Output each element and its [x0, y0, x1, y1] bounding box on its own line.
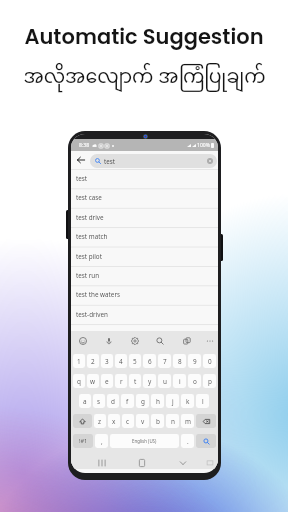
- button[interactable]: Back: [71, 151, 90, 169]
- button[interactable]: Search: [196, 434, 216, 448]
- button[interactable]: Shift: [73, 414, 92, 428]
- button[interactable]: x: [108, 414, 120, 428]
- staticText: 8: [178, 357, 182, 366]
- button[interactable]: f: [121, 394, 134, 408]
- staticText: 1: [77, 357, 81, 366]
- button[interactable]: q: [73, 374, 85, 388]
- button[interactable]: o: [188, 374, 201, 388]
- staticText: 4: [119, 357, 123, 366]
- button[interactable]: l: [196, 394, 209, 408]
- staticText: v: [141, 417, 145, 426]
- staticText: l: [202, 397, 204, 406]
- button[interactable]: test-driven: [71, 305, 218, 324]
- button[interactable]: i: [173, 374, 186, 388]
- button[interactable]: test case: [71, 188, 218, 207]
- button[interactable]: z: [94, 414, 106, 428]
- button[interactable]: u: [158, 374, 171, 388]
- button[interactable]: c: [122, 414, 134, 428]
- staticText: .: [187, 437, 189, 445]
- button[interactable]: Voice input: [103, 335, 115, 347]
- staticText: t: [134, 377, 137, 386]
- button[interactable]: test the waters: [71, 285, 218, 304]
- button[interactable]: Search: [154, 335, 166, 347]
- button[interactable]: w: [87, 374, 99, 388]
- button[interactable]: Clear search: [207, 158, 213, 164]
- button[interactable]: .: [181, 434, 194, 448]
- button[interactable]: h: [151, 394, 164, 408]
- button[interactable]: Clipboard: [181, 335, 193, 347]
- button[interactable]: test pilot: [71, 247, 218, 266]
- staticText: !#1: [79, 437, 88, 445]
- staticText: test-driven: [76, 310, 108, 319]
- button[interactable]: p: [203, 374, 216, 388]
- button[interactable]: m: [181, 414, 194, 428]
- button[interactable]: test run: [71, 266, 218, 285]
- staticText: 7: [163, 357, 167, 366]
- staticText: o: [193, 377, 197, 386]
- button[interactable]: test: [71, 169, 218, 188]
- button[interactable]: Backspace: [196, 414, 216, 428]
- button[interactable]: ,: [95, 434, 108, 448]
- button[interactable]: 1: [73, 354, 85, 368]
- button[interactable]: a: [79, 394, 91, 408]
- button[interactable]: s: [93, 394, 105, 408]
- button[interactable]: k: [181, 394, 194, 408]
- staticText: j: [172, 397, 174, 406]
- staticText: ,: [101, 437, 103, 445]
- button[interactable]: d: [107, 394, 119, 408]
- button[interactable]: More options: [204, 335, 216, 347]
- button[interactable]: 2: [87, 354, 99, 368]
- staticText: 0: [208, 357, 212, 366]
- button[interactable]: j: [166, 394, 179, 408]
- button[interactable]: 9: [188, 354, 201, 368]
- button[interactable]: r: [115, 374, 127, 388]
- staticText: c: [126, 417, 130, 426]
- button[interactable]: t: [129, 374, 141, 388]
- staticText: 3: [105, 357, 109, 366]
- button[interactable]: 6: [143, 354, 156, 368]
- button[interactable]: English (US): [110, 434, 179, 448]
- staticText: k: [186, 397, 190, 406]
- button[interactable]: 3: [101, 354, 113, 368]
- button[interactable]: test drive: [71, 208, 218, 227]
- button[interactable]: Home: [136, 457, 148, 469]
- button[interactable]: b: [151, 414, 164, 428]
- staticText: f: [126, 397, 129, 406]
- staticText: 5: [133, 357, 137, 366]
- button[interactable]: Keyboard layout: [204, 457, 216, 469]
- button[interactable]: 7: [158, 354, 171, 368]
- staticText: test: [76, 174, 88, 183]
- button[interactable]: Emoji: [77, 335, 89, 347]
- staticText: w: [90, 377, 96, 386]
- staticText: test pilot: [76, 252, 102, 261]
- button[interactable]: test tube: [71, 324, 218, 331]
- staticText: i: [179, 377, 181, 386]
- button[interactable]: !#1: [73, 434, 93, 448]
- button[interactable]: 5: [129, 354, 141, 368]
- button[interactable]: Recent apps: [96, 457, 108, 469]
- staticText: အလိုအလျောက် အကြံပြုချက်: [23, 58, 266, 99]
- staticText: p: [208, 377, 212, 386]
- button[interactable]: y: [143, 374, 156, 388]
- staticText: m: [185, 417, 191, 426]
- staticText: English (US): [132, 438, 157, 444]
- staticText: r: [120, 377, 123, 386]
- button[interactable]: g: [136, 394, 149, 408]
- button[interactable]: test match: [71, 227, 218, 246]
- staticText: y: [148, 377, 152, 386]
- staticText: test case: [76, 193, 102, 202]
- button[interactable]: test: [90, 154, 217, 168]
- button[interactable]: v: [136, 414, 149, 428]
- button[interactable]: 8: [173, 354, 186, 368]
- button[interactable]: n: [166, 414, 179, 428]
- staticText: h: [156, 397, 160, 406]
- staticText: b: [156, 417, 160, 426]
- button[interactable]: 4: [115, 354, 127, 368]
- staticText: g: [141, 397, 145, 406]
- button[interactable]: Hide keyboard: [177, 457, 189, 469]
- button[interactable]: Keyboard settings: [129, 335, 141, 347]
- button[interactable]: 0: [203, 354, 216, 368]
- button[interactable]: e: [101, 374, 113, 388]
- staticText: 9: [193, 357, 197, 366]
